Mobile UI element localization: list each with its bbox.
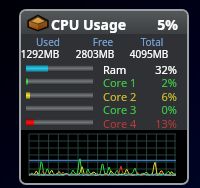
- button[interactable]: CPU Usage: [21, 11, 187, 34]
- staticText: 5%: [121, 15, 178, 34]
- staticText: CPU Usage: [51, 15, 127, 34]
- button[interactable]: Core 1: [21, 75, 187, 87]
- staticText: Core 3: [103, 102, 137, 114]
- staticText: 4095MB: [109, 47, 187, 61]
- staticText: Used: [21, 35, 88, 49]
- staticText: Core 4: [103, 116, 137, 128]
- staticText: 1292MB: [21, 47, 80, 61]
- button[interactable]: Core 2: [21, 89, 187, 101]
- staticText: 6%: [121, 89, 177, 101]
- other: CPU history graph: [21, 130, 187, 183]
- staticText: 2803MB: [55, 47, 135, 61]
- button[interactable]: Ram: [21, 62, 187, 74]
- staticText: 2%: [121, 75, 177, 87]
- button[interactable]: Core 3: [21, 102, 187, 114]
- button[interactable]: Core 4: [21, 116, 187, 128]
- staticText: Ram: [103, 62, 127, 74]
- staticText: Core 1: [103, 75, 137, 87]
- staticText: Core 2: [103, 89, 137, 101]
- staticText: Free: [63, 35, 143, 49]
- staticText: 32%: [121, 62, 177, 74]
- staticText: 0%: [121, 102, 177, 114]
- staticText: Total: [112, 35, 187, 49]
- staticText: 13%: [121, 116, 177, 128]
